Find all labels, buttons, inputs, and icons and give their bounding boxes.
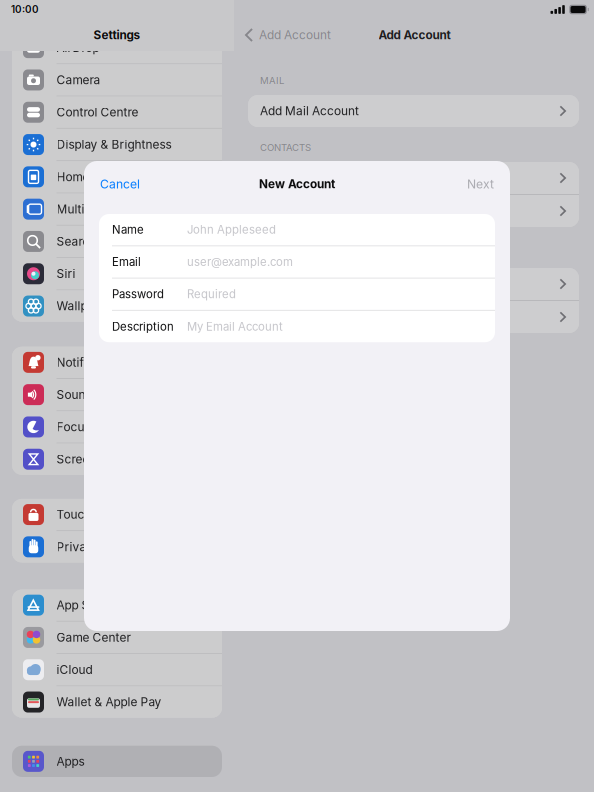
- button[interactable]: Default Account: [248, 195, 579, 227]
- staticText: AirDrop: [56, 40, 99, 55]
- staticText: Camera: [56, 73, 100, 87]
- button[interactable]: Control Centre: [12, 97, 222, 128]
- staticText: Wallpaper: [56, 299, 112, 313]
- staticText: Search: [56, 234, 96, 249]
- staticText: Cancel: [100, 177, 140, 191]
- button[interactable]: iCloud: [12, 654, 222, 685]
- staticText: MAIL: [260, 75, 284, 86]
- staticText: Add Contacts Account: [260, 171, 386, 185]
- button[interactable]: Privacy & Security: [12, 531, 222, 562]
- staticText: Game Center: [56, 630, 130, 645]
- button[interactable]: Next: [467, 161, 494, 207]
- button[interactable]: Default Calendar: [248, 301, 579, 333]
- staticText: Description: [112, 320, 174, 333]
- button[interactable]: Notifications: [12, 347, 222, 378]
- staticText: Sounds: [56, 387, 98, 402]
- button[interactable]: Focus: [12, 411, 222, 443]
- staticText: Add Account: [259, 28, 331, 42]
- staticText: Siri: [56, 267, 75, 281]
- button[interactable]: Add Contacts Account: [248, 162, 579, 194]
- staticText: Wallet & Apple Pay: [56, 695, 161, 709]
- button[interactable]: Add Account: [234, 19, 337, 51]
- staticText: Add Account: [378, 28, 450, 42]
- button[interactable]: Add Calendar Account: [248, 268, 579, 300]
- staticText: 10:00: [11, 3, 39, 15]
- button[interactable]: Game Center: [12, 622, 222, 653]
- staticText: Touch ID & Passcode: [56, 507, 175, 522]
- button[interactable]: Multitasking & Gestures: [12, 193, 222, 225]
- button[interactable]: Touch ID & Passcode: [12, 499, 222, 530]
- staticText: Multitasking & Gestures: [56, 202, 189, 216]
- staticText: Apps: [56, 754, 84, 769]
- button[interactable]: App Store: [12, 589, 222, 621]
- button[interactable]: AirDrop: [12, 32, 222, 63]
- staticText: New Account: [259, 177, 335, 191]
- staticText: Settings: [93, 28, 140, 42]
- staticText: Screen Time: [56, 452, 127, 466]
- staticText: Default Calendar: [260, 310, 355, 324]
- button[interactable]: Sounds: [12, 379, 222, 410]
- button[interactable]: Cancel: [100, 161, 140, 207]
- button[interactable]: Search: [12, 226, 222, 257]
- staticText: Required: [187, 287, 236, 301]
- button[interactable]: Screen Time: [12, 444, 222, 475]
- staticText: My Email Account: [187, 320, 283, 333]
- button[interactable]: Siri: [12, 258, 222, 289]
- staticText: Privacy & Security: [56, 540, 162, 554]
- staticText: Home: [56, 170, 89, 184]
- staticText: Default Account: [260, 204, 351, 218]
- staticText: Email: [112, 255, 141, 269]
- staticText: iCloud: [56, 663, 92, 677]
- staticText: Password: [112, 287, 164, 301]
- button[interactable]: Home: [12, 161, 222, 192]
- button[interactable]: Display & Brightness: [12, 129, 222, 160]
- staticText: user@example.com: [187, 255, 293, 269]
- staticText: Notifications: [56, 355, 127, 370]
- staticText: John Appleseed: [187, 223, 276, 236]
- staticText: Display & Brightness: [56, 137, 171, 152]
- staticText: Add Calendar Account: [260, 277, 386, 291]
- button[interactable]: Add Mail Account: [248, 95, 579, 127]
- staticText: Add Mail Account: [260, 104, 359, 118]
- staticText: Focus: [56, 420, 90, 434]
- staticText: Name: [112, 223, 144, 236]
- button[interactable]: Apps: [12, 746, 222, 777]
- staticText: Next: [467, 177, 494, 191]
- button[interactable]: Camera: [12, 64, 222, 96]
- staticText: Control Centre: [56, 105, 138, 119]
- button[interactable]: Wallet & Apple Pay: [12, 686, 222, 718]
- staticText: App Store: [56, 598, 111, 612]
- staticText: CONTACTS: [260, 142, 311, 153]
- button[interactable]: Wallpaper: [12, 290, 222, 322]
